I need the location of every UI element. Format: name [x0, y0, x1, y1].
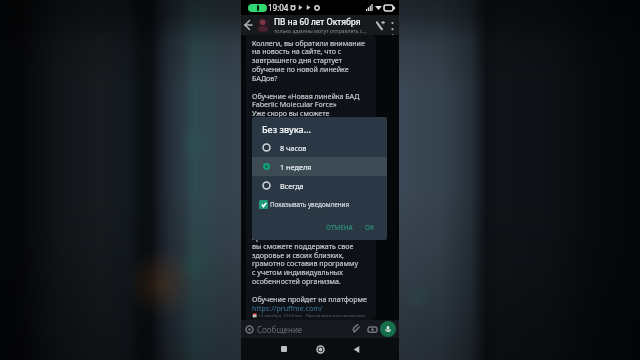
- button[interactable]: Всегда: [252, 176, 387, 195]
- button[interactable]: Home: [312, 341, 328, 357]
- staticText: Всегда: [280, 181, 304, 191]
- button[interactable]: Call: [373, 15, 387, 35]
- button[interactable]: ОТМЕНА: [322, 220, 357, 235]
- staticText: Без звука...: [262, 123, 312, 135]
- button[interactable]: Back: [348, 341, 364, 357]
- button[interactable]: More options: [387, 15, 398, 35]
- staticText: на основе растительных экстрактов и вита…: [252, 144, 344, 198]
- staticText: применению и схемы приема, а также ответ…: [252, 197, 363, 251]
- staticText: 8 часов: [280, 143, 307, 153]
- staticText: ОК: [365, 223, 375, 232]
- staticText: только админы могут отправлять с…: [274, 27, 367, 34]
- button[interactable]: Attach file: [350, 323, 362, 335]
- staticText: Обучение «Новая линейка БАД Faberlic Mol…: [252, 91, 360, 145]
- staticText: Сообщение: [257, 324, 303, 335]
- button[interactable]: Recent apps: [276, 341, 292, 357]
- staticText: Показывать уведомления: [270, 200, 350, 209]
- button[interactable]: Camera: [366, 323, 378, 335]
- staticText: 1 неделя: [280, 162, 312, 172]
- button[interactable]: Emoji: [243, 323, 255, 335]
- button[interactable]: ОК: [361, 220, 379, 235]
- button[interactable]: Record voice message: [380, 321, 396, 337]
- button[interactable]: Показывать уведомления: [252, 195, 387, 214]
- button[interactable]: 1 неделя: [252, 157, 387, 176]
- staticText: ПВ на 60 лет Октября: [274, 16, 361, 27]
- staticText: 📅 14 декабря, 19:00 мск · Приглашаем все…: [252, 313, 365, 319]
- staticText: ОТМЕНА: [326, 223, 353, 232]
- staticText: Коллеги, вы обратили внимание на новость…: [252, 38, 365, 92]
- button[interactable]: Back: [241, 15, 254, 35]
- button[interactable]: 8 часов: [252, 138, 387, 157]
- staticText: 19:04: [268, 2, 289, 13]
- staticText: здоровье и своих близких, грамотно соста…: [252, 250, 367, 304]
- staticText: https://pruffme.com/: [252, 303, 323, 313]
